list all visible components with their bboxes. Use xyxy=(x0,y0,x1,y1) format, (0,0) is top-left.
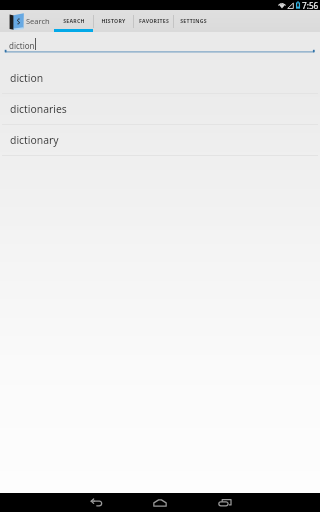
button[interactable]: dictionaries xyxy=(0,94,320,125)
button[interactable]: SEARCH xyxy=(54,10,93,32)
staticText: Search xyxy=(26,16,50,26)
button[interactable]: diction xyxy=(0,63,320,94)
button[interactable]: SETTINGS xyxy=(174,10,213,32)
button[interactable]: Back xyxy=(83,493,109,512)
staticText: SEARCH xyxy=(63,17,85,24)
button[interactable]: FAVORITES xyxy=(134,10,173,32)
button[interactable]: Search xyxy=(0,10,53,32)
staticText: SETTINGS xyxy=(180,17,207,24)
button[interactable]: Recent apps xyxy=(212,493,238,512)
staticText: diction xyxy=(9,40,35,51)
button[interactable]: diction xyxy=(0,32,320,53)
button[interactable]: HISTORY xyxy=(94,10,133,32)
staticText: 7:56 xyxy=(302,0,319,10)
button[interactable]: dictionary xyxy=(0,125,320,156)
staticText: HISTORY xyxy=(101,17,126,24)
staticText: FAVORITES xyxy=(139,17,169,24)
staticText: diction xyxy=(10,71,44,85)
staticText: dictionaries xyxy=(10,102,67,116)
staticText: dictionary xyxy=(10,133,59,147)
button[interactable]: Home xyxy=(147,493,173,512)
